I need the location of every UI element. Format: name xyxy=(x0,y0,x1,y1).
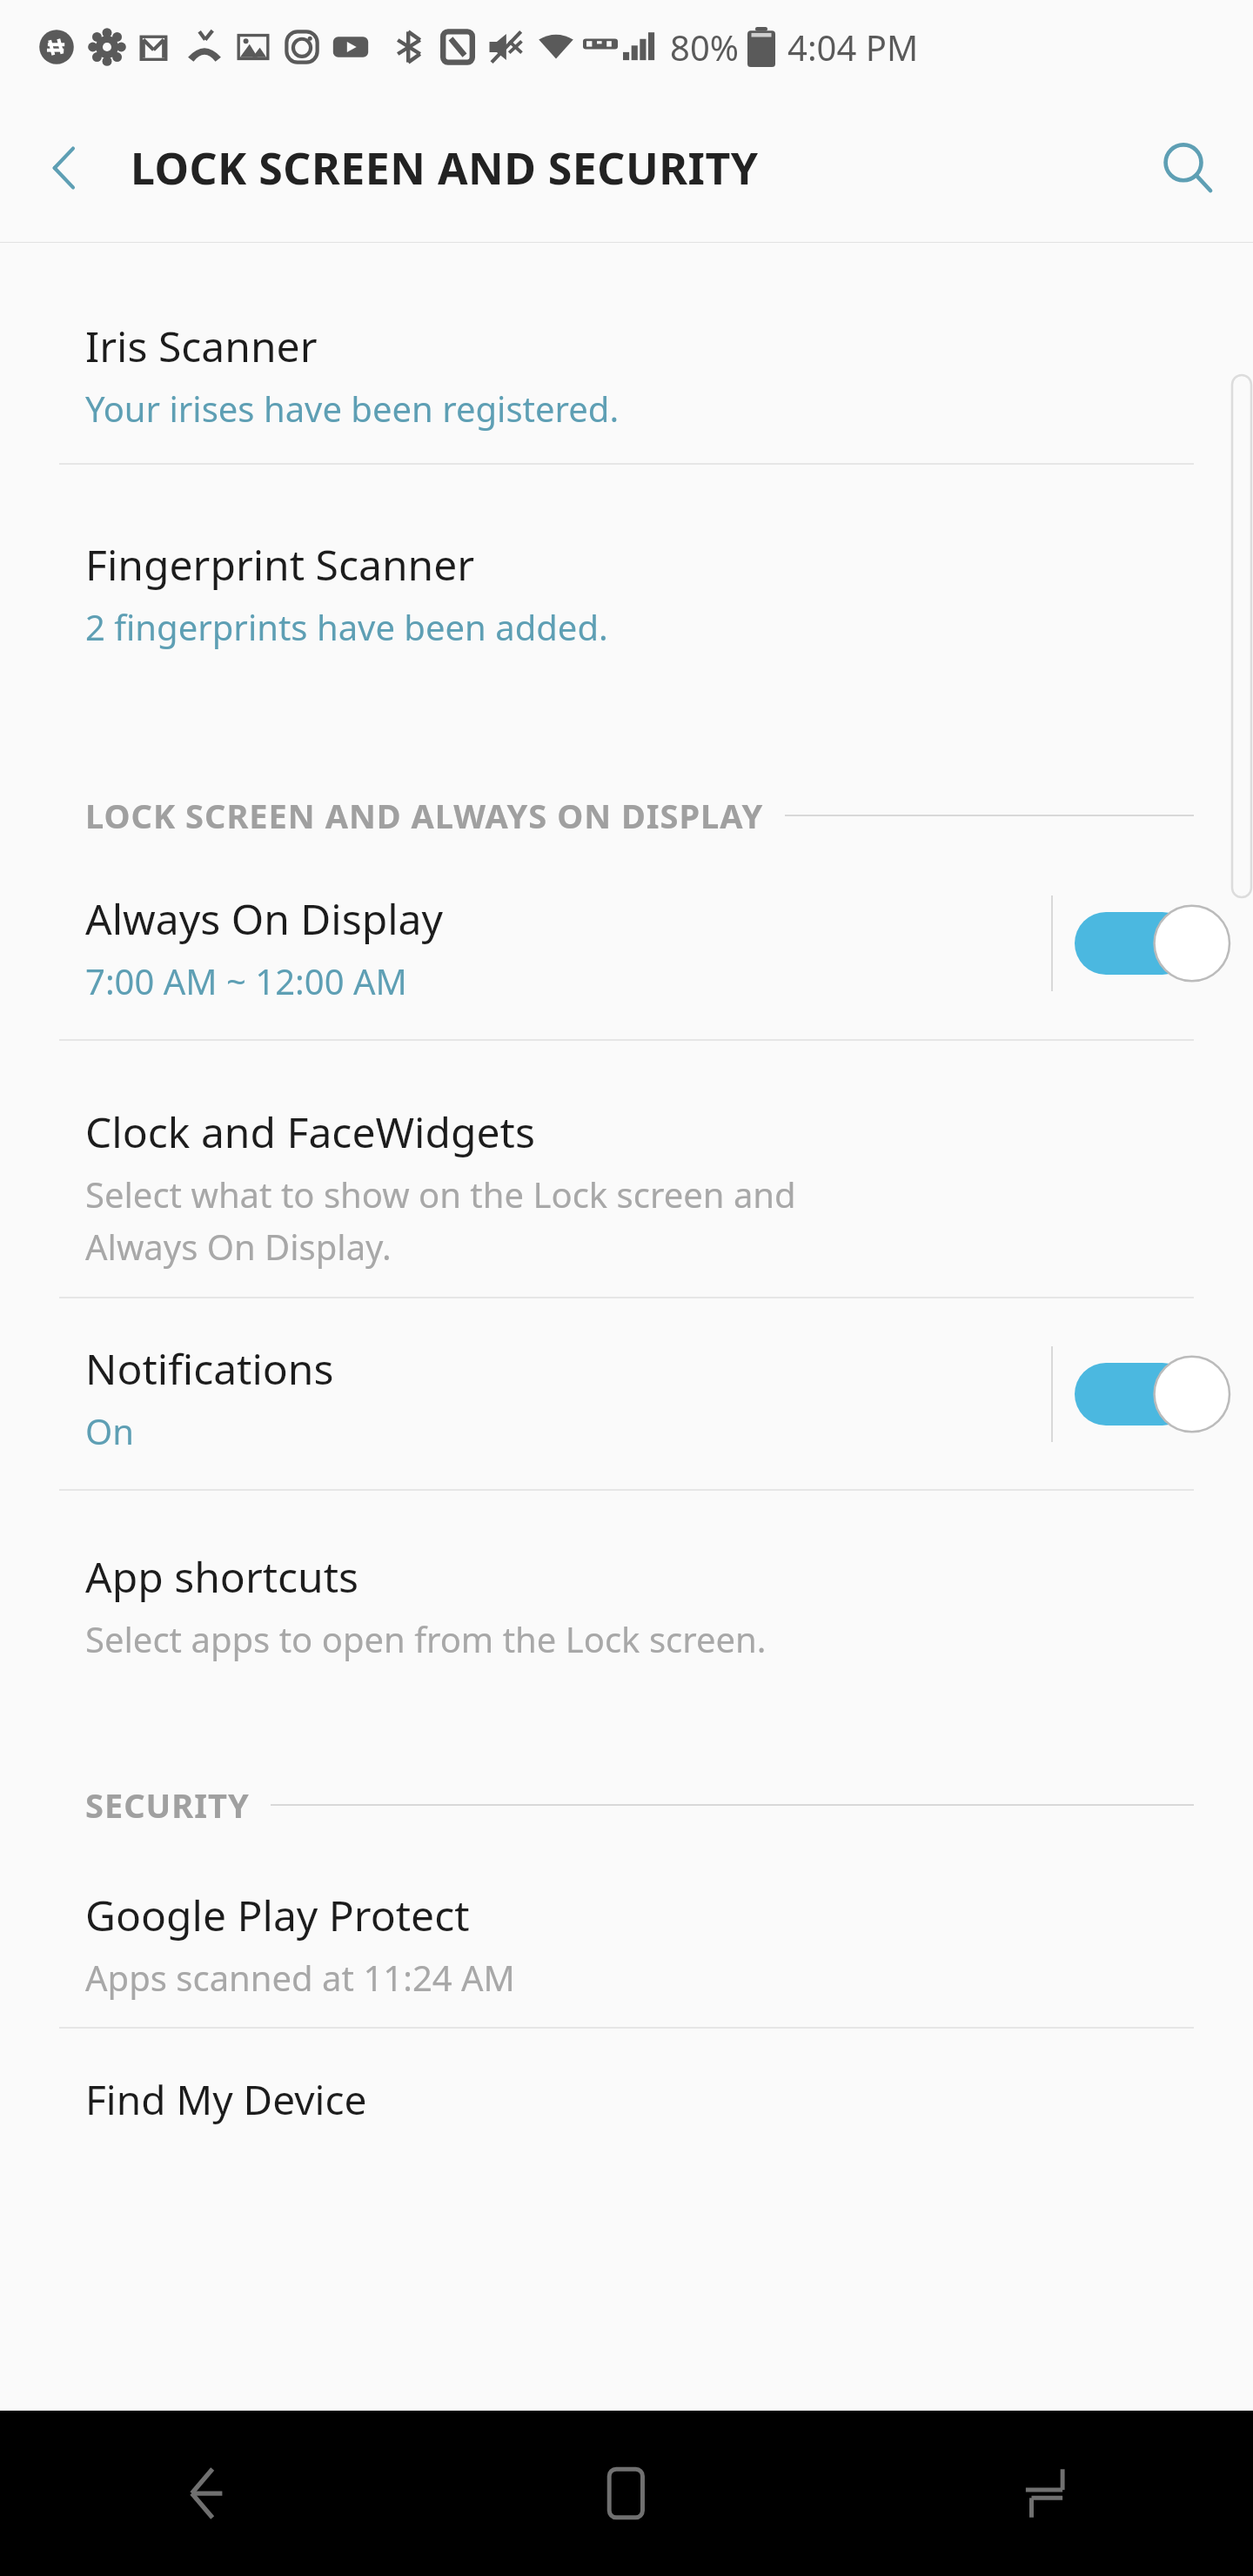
staticText: Select apps to open from the Lock screen… xyxy=(85,1615,767,1662)
staticText: LOCK SCREEN AND SECURITY xyxy=(131,138,759,198)
staticText: Your irises have been registered. xyxy=(85,385,620,432)
staticText: Apps scanned at 11:24 AM xyxy=(85,1954,515,2001)
button[interactable]: Toggle Notifications xyxy=(1053,1325,1253,1464)
staticText: Fingerprint Scanner xyxy=(85,536,475,593)
button[interactable]: Google Play Protect xyxy=(0,1836,1253,2027)
button[interactable]: Fingerprint Scanner xyxy=(0,465,1253,681)
staticText: On xyxy=(85,1407,134,1454)
staticText: Always On Display xyxy=(85,890,444,947)
button[interactable]: Back xyxy=(0,94,131,242)
staticText: LOCK SCREEN AND ALWAYS ON DISPLAY xyxy=(85,793,764,838)
staticText: Notifications xyxy=(85,1340,334,1397)
button[interactable]: Back xyxy=(0,2411,418,2576)
staticText: Google Play Protect xyxy=(85,1887,470,1943)
button[interactable]: App shortcuts xyxy=(0,1491,1253,1695)
button[interactable]: Search xyxy=(1122,94,1253,242)
button[interactable]: Recent apps xyxy=(835,2411,1253,2576)
staticText: App shortcuts xyxy=(85,1548,359,1605)
button[interactable]: Iris Scanner xyxy=(0,243,1253,463)
staticText: 7:00 AM ~ 12:00 AM xyxy=(85,957,407,1004)
staticText: 2 fingerprints have been added. xyxy=(85,603,608,650)
button[interactable]: Find My Device xyxy=(0,2072,1253,2127)
staticText: Find My Device xyxy=(85,2072,367,2127)
staticText: Iris Scanner xyxy=(85,318,318,374)
staticText: 80% xyxy=(670,23,739,70)
button[interactable]: Toggle Always On Display xyxy=(1053,874,1253,1013)
staticText: Select what to show on the Lock screen a… xyxy=(85,1171,796,1271)
button[interactable]: Home xyxy=(418,2411,835,2576)
button[interactable]: Notifications xyxy=(0,1298,1253,1489)
staticText: 4:04 PM xyxy=(787,23,919,70)
staticText: SECURITY xyxy=(85,1782,250,1828)
button[interactable]: Clock and FaceWidgets xyxy=(0,1041,1253,1297)
button[interactable]: Always On Display xyxy=(0,847,1253,1039)
staticText: Clock and FaceWidgets xyxy=(85,1104,535,1160)
